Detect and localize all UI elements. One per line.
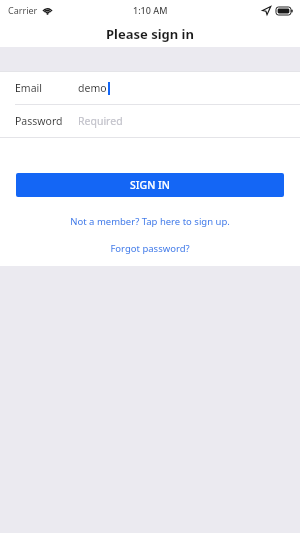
- button[interactable]: Email: [0, 72, 300, 104]
- staticText: Required: [78, 114, 123, 128]
- other: Battery: [276, 7, 293, 15]
- staticText: SIGN IN: [130, 178, 170, 192]
- staticText: Please sign in: [106, 25, 194, 43]
- staticText: Password: [15, 114, 78, 128]
- other: Location: [262, 6, 271, 15]
- staticText: Forgot password?: [110, 242, 190, 255]
- staticText: Email: [15, 81, 78, 95]
- button[interactable]: SIGN IN: [16, 173, 284, 197]
- button[interactable]: Forgot password?: [0, 238, 300, 258]
- staticText: Not a member? Tap here to sign up.: [70, 215, 230, 228]
- staticText: 1:10 AM: [133, 4, 168, 16]
- staticText: demo: [78, 81, 107, 95]
- staticText: Carrier: [8, 4, 38, 16]
- button[interactable]: Not a member? Tap here to sign up.: [0, 211, 300, 231]
- button[interactable]: Password: [0, 105, 300, 137]
